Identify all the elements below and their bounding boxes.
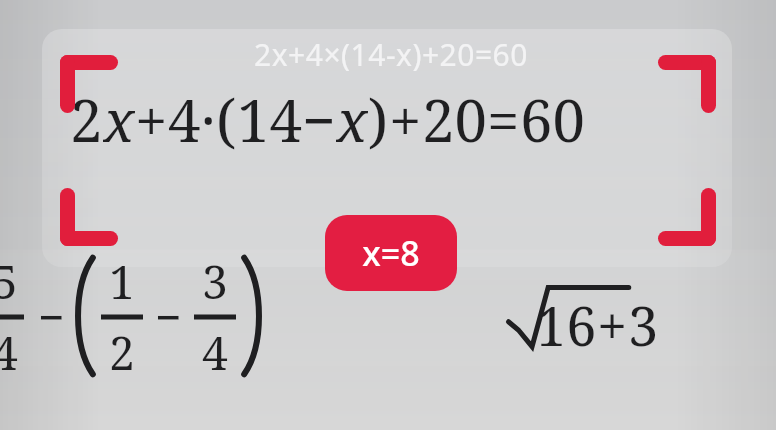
staticText: x xyxy=(103,80,135,158)
staticText: 20 xyxy=(422,80,487,158)
staticText: − xyxy=(38,285,65,348)
staticText: − xyxy=(302,80,336,158)
staticText: 5 xyxy=(0,250,18,313)
staticText: x=8 xyxy=(362,230,420,276)
staticText: 16 xyxy=(536,288,597,362)
staticText: 2 xyxy=(70,80,103,158)
staticText: + xyxy=(597,288,628,362)
staticText: 60 xyxy=(520,80,585,158)
staticText: 14 xyxy=(237,80,302,158)
staticText: 4 xyxy=(202,321,228,382)
staticText: 1 xyxy=(109,250,135,313)
staticText: 3 xyxy=(202,250,228,313)
staticText: 4 xyxy=(168,80,201,158)
button[interactable]: Scanned expression region xyxy=(42,29,732,267)
staticText: 2x+4×(14-x)+20=60 xyxy=(254,34,528,75)
staticText: 4 xyxy=(0,321,18,382)
button[interactable]: x=8 xyxy=(325,215,457,291)
staticText: · xyxy=(201,80,216,158)
staticText: + xyxy=(135,80,168,158)
staticText: ) xyxy=(368,80,389,158)
staticText: + xyxy=(389,80,422,158)
staticText: = xyxy=(487,80,520,158)
staticText: 2 xyxy=(109,321,135,382)
staticText: x xyxy=(336,80,368,158)
staticText: ( xyxy=(216,80,237,158)
staticText: − xyxy=(155,285,182,348)
staticText: 3 xyxy=(628,288,659,362)
